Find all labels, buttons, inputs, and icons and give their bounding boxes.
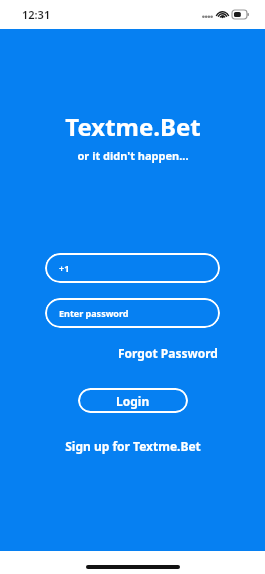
button[interactable]: Sign up for Textme.Bet xyxy=(61,435,205,457)
staticText: or it didn't happen... xyxy=(77,148,189,163)
staticText: Forgot Password xyxy=(118,345,218,361)
staticText: Enter password xyxy=(59,307,129,319)
staticText: Sign up for Textme.Bet xyxy=(65,438,201,454)
staticText: Textme.Bet xyxy=(65,110,201,143)
button[interactable]: +1 xyxy=(45,253,220,283)
staticText: 12:31 xyxy=(22,7,51,22)
staticText: +1 xyxy=(59,262,70,274)
button[interactable]: Login xyxy=(78,388,188,413)
button[interactable]: Forgot Password xyxy=(116,342,220,364)
staticText: Login xyxy=(116,393,150,409)
button[interactable]: Enter password xyxy=(45,298,220,328)
